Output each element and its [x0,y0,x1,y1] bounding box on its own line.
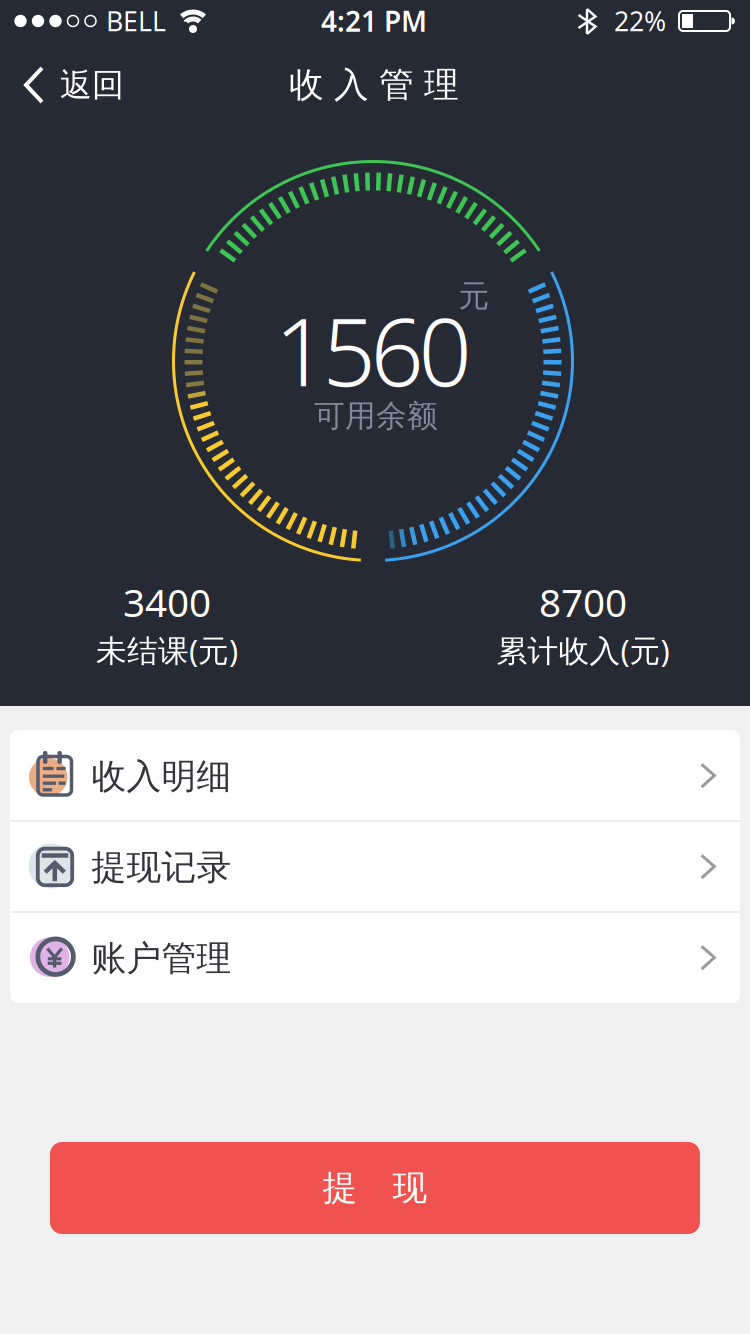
button[interactable]: 收入明细 [10,730,740,821]
staticText: 8700 [539,576,627,628]
staticText: 返回 [60,65,124,105]
staticText: 提 现 [322,1167,427,1209]
staticText: 4:21 PM [321,2,427,40]
staticText: 账户管理 [91,937,231,980]
staticText: 收 入 管 理 [289,64,459,106]
staticText: BELL [106,3,166,39]
button[interactable]: 账户管理 [10,912,740,1003]
button[interactable]: 提 现 [50,1142,700,1234]
staticText: 提现记录 [91,846,231,889]
button[interactable]: 返回 [22,63,142,107]
staticText: 3400 [123,576,211,628]
button[interactable]: 提现记录 [10,821,740,912]
staticText: 元 [458,277,489,315]
staticText: 收入明细 [91,755,231,798]
staticText: 可用余额 [314,397,438,435]
staticText: 累计收入(元) [496,630,669,670]
staticText: 1560 [274,288,471,412]
staticText: 未结课(元) [96,630,238,670]
staticText: 22% [614,3,666,39]
